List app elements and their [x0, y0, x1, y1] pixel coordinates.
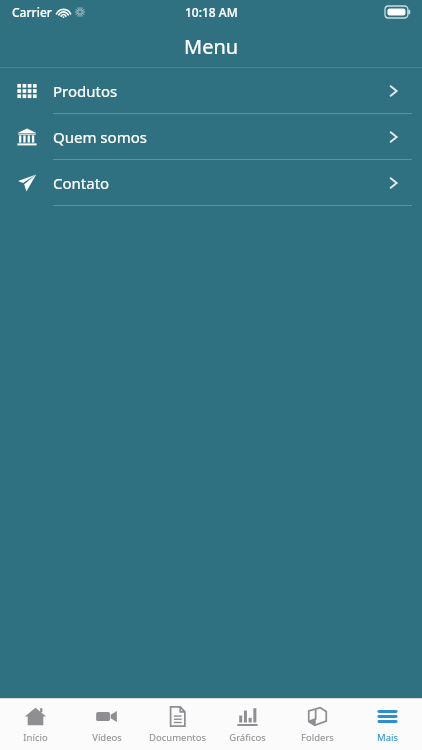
staticText: Quem somos: [53, 127, 147, 147]
button[interactable]: Mais: [352, 699, 422, 750]
staticText: Contato: [53, 173, 110, 193]
staticText: Carrier: [12, 4, 52, 20]
staticText: Menu: [184, 33, 239, 60]
button[interactable]: Folders: [282, 699, 352, 750]
button[interactable]: Produtos: [0, 68, 422, 113]
staticText: 10:18 AM: [185, 4, 238, 20]
staticText: Início: [23, 731, 48, 744]
staticText: Mais: [377, 731, 398, 744]
staticText: Vídeos: [92, 731, 122, 744]
button[interactable]: Início: [0, 699, 71, 750]
button[interactable]: Quem somos: [0, 114, 422, 159]
staticText: Gráficos: [229, 731, 266, 744]
button[interactable]: Documentos: [142, 699, 212, 750]
staticText: Produtos: [53, 81, 118, 101]
staticText: Documentos: [149, 731, 206, 744]
button[interactable]: Gráficos: [212, 699, 282, 750]
staticText: Folders: [301, 731, 334, 744]
button[interactable]: Vídeos: [71, 699, 142, 750]
button[interactable]: Contato: [0, 160, 422, 205]
